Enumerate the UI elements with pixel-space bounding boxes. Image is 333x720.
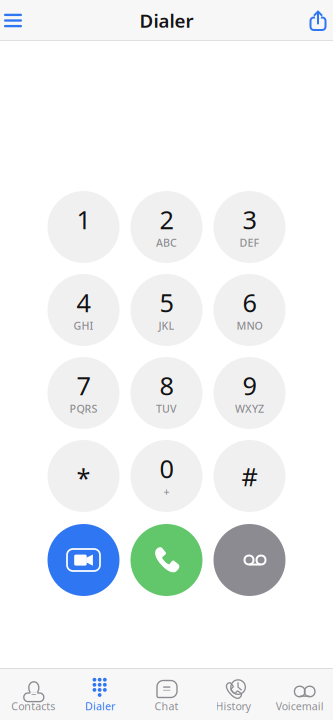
staticText: ABC xyxy=(156,235,177,250)
button[interactable]: History xyxy=(200,669,266,720)
staticText: 6 xyxy=(242,286,256,319)
button[interactable]: 8 xyxy=(130,357,202,429)
button[interactable]: 1 xyxy=(47,191,119,263)
button[interactable]: Call xyxy=(130,524,202,596)
staticText: 2 xyxy=(159,203,173,236)
staticText: 3 xyxy=(242,203,256,236)
staticText: Voicemail xyxy=(276,699,324,713)
staticText: Dialer xyxy=(139,8,193,33)
button[interactable]: 9 xyxy=(213,357,285,429)
button[interactable]: Voicemail xyxy=(213,524,285,596)
staticText: * xyxy=(76,461,90,494)
button[interactable]: Contacts xyxy=(0,669,67,720)
staticText: PQRS xyxy=(69,401,97,416)
staticText: WXYZ xyxy=(235,401,264,416)
staticText: 9 xyxy=(242,369,256,402)
staticText: Contacts xyxy=(11,699,55,713)
button[interactable]: Voicemail xyxy=(266,669,333,720)
button[interactable]: Video call xyxy=(47,524,119,596)
button[interactable]: 0 xyxy=(130,440,202,512)
button[interactable]: 3 xyxy=(213,191,285,263)
staticText: + xyxy=(163,484,169,499)
staticText: 5 xyxy=(159,286,173,319)
button[interactable]: Dialer xyxy=(67,669,133,720)
staticText: GHI xyxy=(73,318,93,333)
button[interactable]: Share xyxy=(309,0,327,41)
staticText: 0 xyxy=(159,452,173,485)
staticText: MNO xyxy=(236,318,262,333)
button[interactable]: 4 xyxy=(47,274,119,346)
staticText: Dialer xyxy=(85,699,115,713)
button[interactable]: 5 xyxy=(130,274,202,346)
staticText: 8 xyxy=(159,369,173,402)
button[interactable]: 7 xyxy=(47,357,119,429)
button[interactable]: 2 xyxy=(130,191,202,263)
button[interactable]: * xyxy=(47,440,119,512)
staticText: TUV xyxy=(156,401,177,416)
staticText: Chat xyxy=(154,699,178,713)
staticText: # xyxy=(241,460,257,493)
button[interactable]: # xyxy=(213,440,285,512)
staticText: History xyxy=(216,699,251,713)
staticText: 1 xyxy=(76,203,90,236)
button[interactable]: 6 xyxy=(213,274,285,346)
staticText: 7 xyxy=(76,369,90,402)
staticText: DEF xyxy=(239,235,259,250)
staticText: 4 xyxy=(76,286,90,319)
button[interactable]: Menu xyxy=(0,0,26,41)
button[interactable]: Chat xyxy=(133,669,200,720)
staticText: JKL xyxy=(158,318,174,333)
